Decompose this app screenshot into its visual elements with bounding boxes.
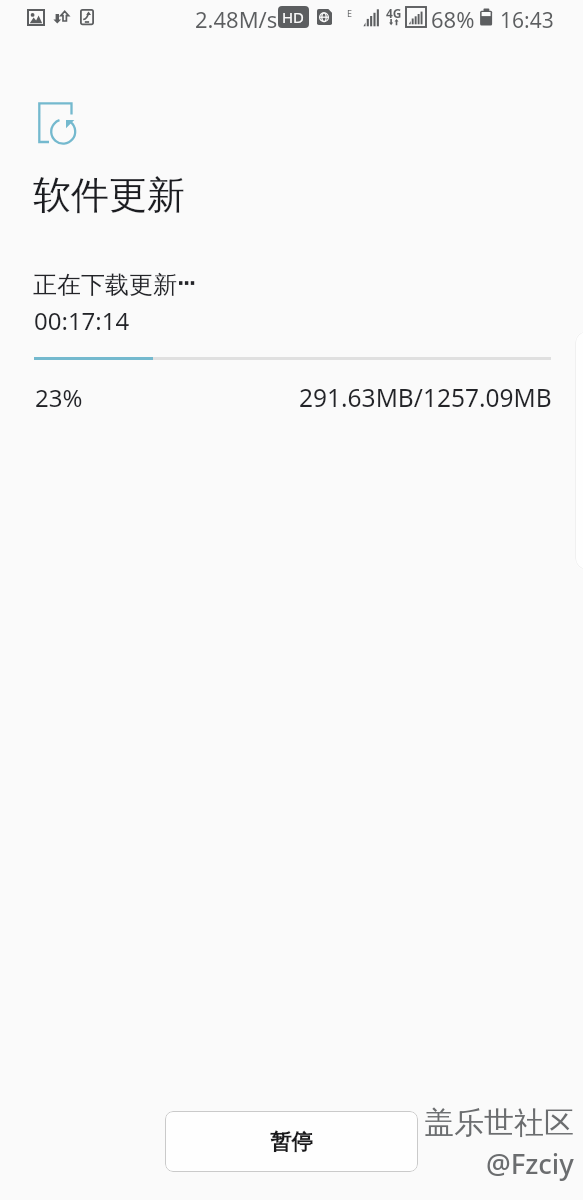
other: Battery 68 percent — [479, 8, 493, 27]
staticText: 暂停 — [270, 1128, 313, 1155]
other: Software update — [36, 100, 80, 148]
staticText: HD — [282, 7, 305, 27]
staticText: 软件更新 — [33, 171, 185, 219]
other: Screen mirroring — [80, 9, 94, 25]
staticText: 00:17:14 — [34, 304, 130, 337]
other: Data transfer — [53, 10, 70, 25]
staticText: 4G — [386, 5, 402, 21]
button[interactable]: 暂停 — [165, 1111, 418, 1172]
other: Screenshot saved — [28, 10, 44, 25]
staticText: 正在下载更新 — [33, 270, 177, 300]
other: Data activity — [389, 19, 400, 26]
staticText: 23% — [35, 381, 83, 414]
staticText: 291.63MB/1257.09MB — [299, 381, 552, 414]
other: SIM 2 signal strength — [406, 7, 426, 27]
staticText: @Fzciy — [486, 1145, 574, 1182]
staticText: 2.48M/s — [195, 4, 278, 34]
staticText: E — [347, 7, 353, 19]
staticText: 68% — [431, 4, 475, 34]
staticText: 盖乐世社区 — [424, 1104, 574, 1142]
staticText: 16:43 — [500, 6, 554, 35]
other: Mobile data — [317, 9, 332, 25]
other: Signal strength — [363, 9, 381, 27]
